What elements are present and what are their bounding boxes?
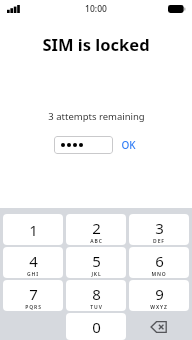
staticText: 7 [29,284,38,304]
button[interactable]: 6 [129,247,189,278]
button[interactable]: 1 [3,214,63,245]
staticText: GHI [27,271,39,278]
staticText: 6 [155,251,164,271]
staticText: 5 [92,251,101,271]
button[interactable]: 0 [66,313,126,340]
button[interactable]: Backspace [129,313,189,340]
staticText: 3 [155,218,164,238]
staticText: 8 [92,284,101,304]
staticText: OK [121,138,136,152]
button[interactable]: 7 [3,280,63,311]
button[interactable]: 5 [66,247,126,278]
staticText: 9 [155,284,164,304]
staticText: 10:00 [85,3,107,15]
staticText: TUV [90,304,103,311]
button[interactable]: 2 [66,214,126,245]
staticText: 4 [29,251,38,271]
button[interactable] [54,136,113,154]
staticText: PQRS [25,304,42,311]
button[interactable]: 8 [66,280,126,311]
staticText: 3 attempts remaining [48,110,145,123]
staticText: ABC [90,238,103,245]
staticText: DEF [153,238,165,245]
button[interactable]: OK [118,135,139,155]
staticText: MNO [151,271,167,278]
button[interactable]: 3 [129,214,189,245]
button[interactable]: 9 [129,280,189,311]
staticText: 2 [92,218,101,238]
button[interactable]: 4 [3,247,63,278]
staticText: WXYZ [150,304,168,311]
staticText: SIM is locked [0,33,192,55]
staticText: 1 [29,220,38,240]
staticText: JKL [91,271,102,278]
staticText: 0 [92,317,101,337]
